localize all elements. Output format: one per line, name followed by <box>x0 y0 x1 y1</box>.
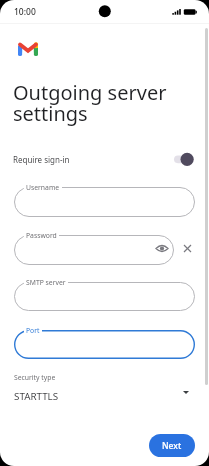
staticText: Outgoing server settings <box>13 79 185 127</box>
button[interactable]: Require sign-in <box>0 147 209 172</box>
button[interactable]: Security type <box>0 370 209 410</box>
button[interactable]: Next <box>149 434 195 457</box>
staticText: SMTP server <box>26 278 66 287</box>
button[interactable]: Password <box>14 235 174 265</box>
staticText: Password <box>26 231 57 240</box>
button[interactable]: Username <box>14 187 195 217</box>
button[interactable]: Show password <box>151 238 172 259</box>
button[interactable]: SMTP server <box>14 282 195 311</box>
button[interactable]: Clear <box>177 238 198 259</box>
staticText: Username <box>26 183 60 192</box>
button[interactable]: Port <box>14 330 195 359</box>
staticText: 10:00 <box>14 6 36 18</box>
staticText: Next <box>162 440 182 452</box>
staticText: Security type <box>14 373 56 382</box>
staticText: Port <box>26 326 40 335</box>
staticText: Require sign-in <box>13 154 70 165</box>
staticText: STARTTLS <box>14 390 59 403</box>
